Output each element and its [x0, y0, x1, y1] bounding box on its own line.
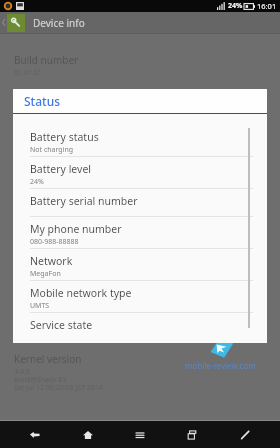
staticText: Status — [14, 86, 44, 100]
button[interactable]: Recent apps — [175, 421, 209, 448]
staticText: Status — [24, 93, 61, 109]
button[interactable]: Status — [0, 82, 280, 115]
staticText: 24% — [30, 177, 44, 187]
staticText: Battery status — [30, 130, 99, 144]
button[interactable]: Kernel version — [0, 348, 280, 396]
button[interactable]: My phone number — [13, 217, 267, 248]
button[interactable]: Home — [71, 421, 105, 448]
staticText: Mobile network type — [30, 286, 132, 300]
button[interactable]: Service state — [13, 313, 267, 340]
button[interactable]: Battery serial number — [13, 189, 267, 216]
button[interactable]: Back — [18, 421, 52, 448]
staticText: Not charging — [30, 145, 74, 155]
button[interactable]: Menu — [123, 421, 157, 448]
staticText: Device info — [33, 16, 85, 30]
staticText: Service state — [30, 318, 93, 332]
button[interactable]: Battery level — [13, 157, 267, 188]
staticText: MegaFon — [30, 269, 61, 279]
staticText: 24% — [228, 1, 243, 11]
staticText: Baseband version — [14, 319, 98, 333]
staticText: 1.00 — [14, 334, 28, 344]
staticText: 080-988-88888 — [30, 237, 79, 247]
staticText: My phone number — [30, 222, 122, 236]
staticText: Battery serial number — [30, 194, 138, 208]
staticText: Network — [30, 254, 73, 268]
button[interactable]: Mobile network type — [13, 281, 267, 312]
staticText: Build number — [14, 53, 79, 67]
button[interactable]: Edit — [228, 421, 262, 448]
staticText: mobile-review.com — [185, 360, 256, 371]
button[interactable]: Baseband version — [0, 315, 280, 348]
staticText: Status of the battery, network, and othe… — [14, 101, 189, 111]
staticText: 16:01 — [257, 1, 277, 11]
staticText: 01.01.01 — [14, 68, 42, 78]
staticText: 3.4.0 build@Sharp #3 Sat Jul 12 06:20:08… — [14, 367, 103, 392]
button[interactable]: Navigate up — [0, 12, 7, 33]
staticText: Battery level — [30, 162, 92, 176]
button[interactable]: Network — [13, 249, 267, 280]
staticText: Kernel version — [14, 352, 82, 366]
staticText: UMTS — [30, 301, 50, 311]
button[interactable]: Battery status — [13, 125, 267, 156]
